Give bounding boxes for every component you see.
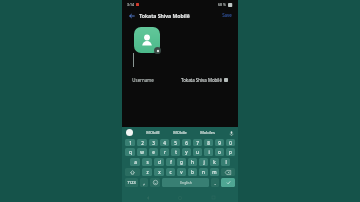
staticText: 5 (174, 140, 177, 146)
button[interactable]: u (193, 148, 202, 156)
button[interactable]: k (210, 158, 219, 166)
staticText: p (229, 149, 232, 155)
button[interactable]: x (154, 168, 164, 176)
button[interactable]: 5 (171, 139, 180, 146)
button[interactable]: e (149, 148, 158, 156)
staticText: u (196, 149, 199, 155)
staticText: g (180, 159, 183, 165)
button[interactable]: ?123 (125, 178, 138, 187)
button[interactable]: v (177, 168, 186, 176)
button[interactable]: 3 (149, 139, 158, 146)
staticText: 6 (185, 140, 188, 146)
button[interactable]: d (154, 158, 164, 166)
button[interactable]: w (137, 148, 147, 156)
staticText: b (191, 169, 194, 175)
staticText: 8 (207, 140, 210, 146)
button[interactable]: 2 (137, 139, 147, 146)
staticText: 3 (152, 140, 155, 146)
staticText: w (140, 149, 144, 155)
button[interactable]: Voice input (228, 130, 234, 136)
button[interactable]: 7 (193, 139, 202, 146)
button[interactable]: 9 (215, 139, 224, 146)
staticText: x (158, 169, 161, 175)
staticText: v (180, 169, 183, 175)
staticText: Tokata Shiva Mobilē (181, 77, 222, 83)
button[interactable]: 4 (160, 139, 169, 146)
button[interactable]: q (125, 148, 135, 156)
staticText: Mobiles (200, 130, 215, 135)
button[interactable]: b (188, 168, 197, 176)
button[interactable]: o (215, 148, 224, 156)
staticText: 1 (129, 140, 132, 146)
button[interactable]: Username (122, 75, 238, 85)
staticText: MObilE (146, 130, 160, 135)
staticText: j (203, 159, 205, 165)
button[interactable]: Period (211, 178, 219, 187)
button[interactable]: p (226, 148, 235, 156)
staticText: d (158, 159, 161, 165)
button[interactable]: Save (221, 12, 233, 18)
button[interactable]: 6 (182, 139, 191, 146)
button[interactable]: z (142, 168, 152, 176)
staticText: r (164, 149, 166, 155)
staticText: q (129, 149, 132, 155)
button[interactable]: t (171, 148, 180, 156)
staticText: f (170, 159, 172, 165)
staticText: Tokata Shiva Mobilē (139, 12, 190, 19)
button[interactable]: 1 (125, 139, 135, 146)
button[interactable]: Backspace (221, 168, 235, 176)
button[interactable]: i (204, 148, 213, 156)
staticText: h (191, 159, 194, 165)
staticText: 2 (141, 140, 144, 146)
button[interactable]: r (160, 148, 169, 156)
button[interactable]: 0 (226, 139, 235, 146)
button[interactable]: a (130, 158, 140, 166)
button[interactable]: Shift (125, 168, 140, 176)
staticText: 3:14 (127, 2, 134, 7)
staticText: z (146, 169, 149, 175)
button[interactable]: Change photo (134, 27, 160, 53)
button[interactable]: Back (127, 11, 136, 20)
button[interactable]: 8 (204, 139, 213, 146)
staticText: m (212, 169, 217, 175)
staticText: MObile (173, 130, 187, 135)
button[interactable]: Keyboard settings (126, 129, 133, 136)
button[interactable]: c (166, 168, 175, 176)
staticText: n (202, 169, 205, 175)
button[interactable]: Done (221, 178, 235, 187)
staticText: 0 (229, 140, 232, 146)
staticText: ?123 (127, 180, 136, 185)
staticText: Save (222, 12, 232, 18)
button[interactable]: f (166, 158, 175, 166)
button[interactable]: Emoji (150, 178, 160, 187)
staticText: l (225, 159, 227, 165)
button[interactable]: h (188, 158, 197, 166)
button[interactable]: Comma (140, 178, 148, 187)
staticText: a (134, 159, 137, 165)
button[interactable]: l (221, 158, 230, 166)
staticText: c (169, 169, 172, 175)
staticText: 68 % (218, 2, 226, 7)
staticText: English (180, 180, 192, 185)
button[interactable]: g (177, 158, 186, 166)
button[interactable]: n (199, 168, 208, 176)
button[interactable]: s (142, 158, 152, 166)
staticText: y (185, 149, 188, 155)
button[interactable]: y (182, 148, 191, 156)
staticText: . (214, 180, 216, 186)
staticText: 7 (196, 140, 199, 146)
staticText: e (152, 149, 155, 155)
button[interactable]: j (199, 158, 208, 166)
button[interactable]: m (210, 168, 219, 176)
staticText: , (143, 180, 145, 186)
staticText: i (208, 149, 210, 155)
staticText: k (213, 159, 216, 165)
staticText: o (218, 149, 221, 155)
staticText: t (175, 149, 177, 155)
button[interactable]: Space (162, 178, 209, 187)
staticText: Username (132, 77, 154, 83)
staticText: 4 (163, 140, 166, 146)
